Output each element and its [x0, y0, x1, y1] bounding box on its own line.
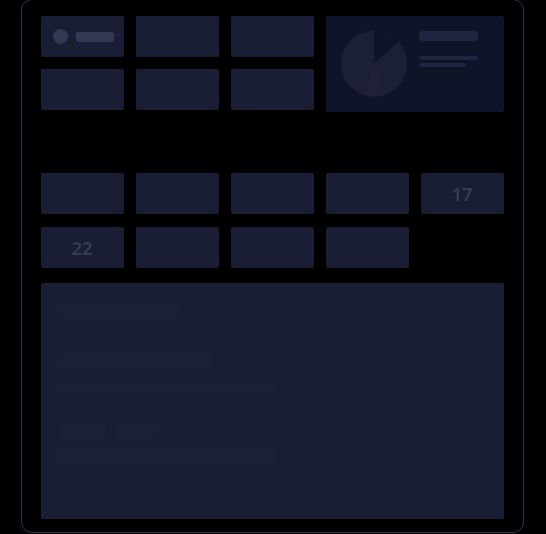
button[interactable]: Statistics chart — [326, 16, 504, 112]
staticText: 22 — [71, 235, 93, 260]
staticText: 17 — [451, 181, 473, 206]
button[interactable]: 17 — [421, 173, 504, 214]
button[interactable]: Account tile — [41, 16, 124, 57]
button[interactable]: 22 — [41, 227, 124, 268]
